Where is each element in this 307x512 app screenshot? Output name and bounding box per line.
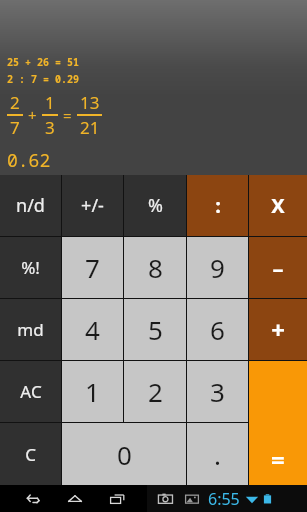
button[interactable]: md <box>0 299 61 360</box>
staticText: 4 <box>85 312 100 347</box>
other: Recents <box>107 489 127 509</box>
staticText: 6 <box>210 312 225 347</box>
button[interactable]: 4 <box>62 299 123 360</box>
button[interactable]: = <box>249 361 307 485</box>
button[interactable]: C <box>0 423 61 485</box>
button[interactable]: n/d <box>0 175 61 236</box>
other: Wi-Fi <box>245 492 259 506</box>
staticText: : <box>215 192 221 219</box>
staticText: AC <box>20 380 42 403</box>
staticText: = <box>63 105 72 125</box>
staticText: C <box>25 443 36 466</box>
button[interactable]: Home <box>54 485 96 512</box>
staticText: 0.62 <box>7 148 51 173</box>
button[interactable]: Recents <box>96 485 138 512</box>
other: Battery <box>263 492 272 506</box>
staticText: 2 : 7 = 0.29 <box>7 72 79 86</box>
staticText: 5 <box>148 312 163 347</box>
staticText: = <box>271 443 285 476</box>
staticText: 9 <box>210 250 225 285</box>
staticText: md <box>17 318 44 341</box>
button[interactable]: 0 <box>62 423 186 485</box>
staticText: 7 <box>85 250 100 285</box>
button[interactable]: Camera <box>157 490 175 508</box>
staticText: 3 <box>210 374 225 409</box>
staticText: 2 <box>10 91 20 114</box>
staticText: 13 <box>80 91 100 114</box>
button[interactable]: 5 <box>124 299 186 360</box>
staticText: 6:55 <box>208 488 240 510</box>
button[interactable]: Gallery <box>184 491 200 507</box>
staticText: %! <box>21 256 40 279</box>
button[interactable]: + <box>249 299 307 360</box>
button[interactable]: 2 <box>124 361 186 422</box>
staticText: 8 <box>148 250 163 285</box>
button[interactable]: 3 <box>187 361 248 422</box>
staticText: . <box>214 437 221 472</box>
button[interactable]: 1 <box>62 361 123 422</box>
staticText: 7 <box>10 116 20 139</box>
other: Camera <box>157 490 175 508</box>
staticText: – <box>272 253 284 283</box>
button[interactable]: – <box>249 237 307 298</box>
staticText: % <box>148 193 163 218</box>
staticText: 0 <box>117 437 132 472</box>
staticText: n/d <box>16 193 45 218</box>
staticText: 1 <box>85 374 100 409</box>
other: Back <box>23 489 43 509</box>
staticText: 3 <box>45 116 55 139</box>
button[interactable]: : <box>187 175 248 236</box>
staticText: X <box>271 192 285 219</box>
staticText: 1 <box>45 91 55 114</box>
button[interactable]: 7 <box>62 237 123 298</box>
button[interactable]: Back <box>12 485 54 512</box>
staticText: 25 + 26 = 51 <box>7 55 79 69</box>
button[interactable]: +/- <box>62 175 123 236</box>
staticText: 21 <box>80 116 100 139</box>
button[interactable]: % <box>124 175 186 236</box>
staticText: 2 <box>148 374 163 409</box>
button[interactable]: %! <box>0 237 61 298</box>
button[interactable]: 9 <box>187 237 248 298</box>
button[interactable]: AC <box>0 361 61 422</box>
staticText: + <box>271 313 285 346</box>
button[interactable]: 8 <box>124 237 186 298</box>
other: Gallery <box>184 491 200 507</box>
other: Home <box>65 489 85 509</box>
button[interactable]: 6 <box>187 299 248 360</box>
button[interactable]: X <box>249 175 307 236</box>
staticText: +/- <box>81 193 104 218</box>
button[interactable]: . <box>187 423 248 485</box>
staticText: + <box>28 105 37 125</box>
